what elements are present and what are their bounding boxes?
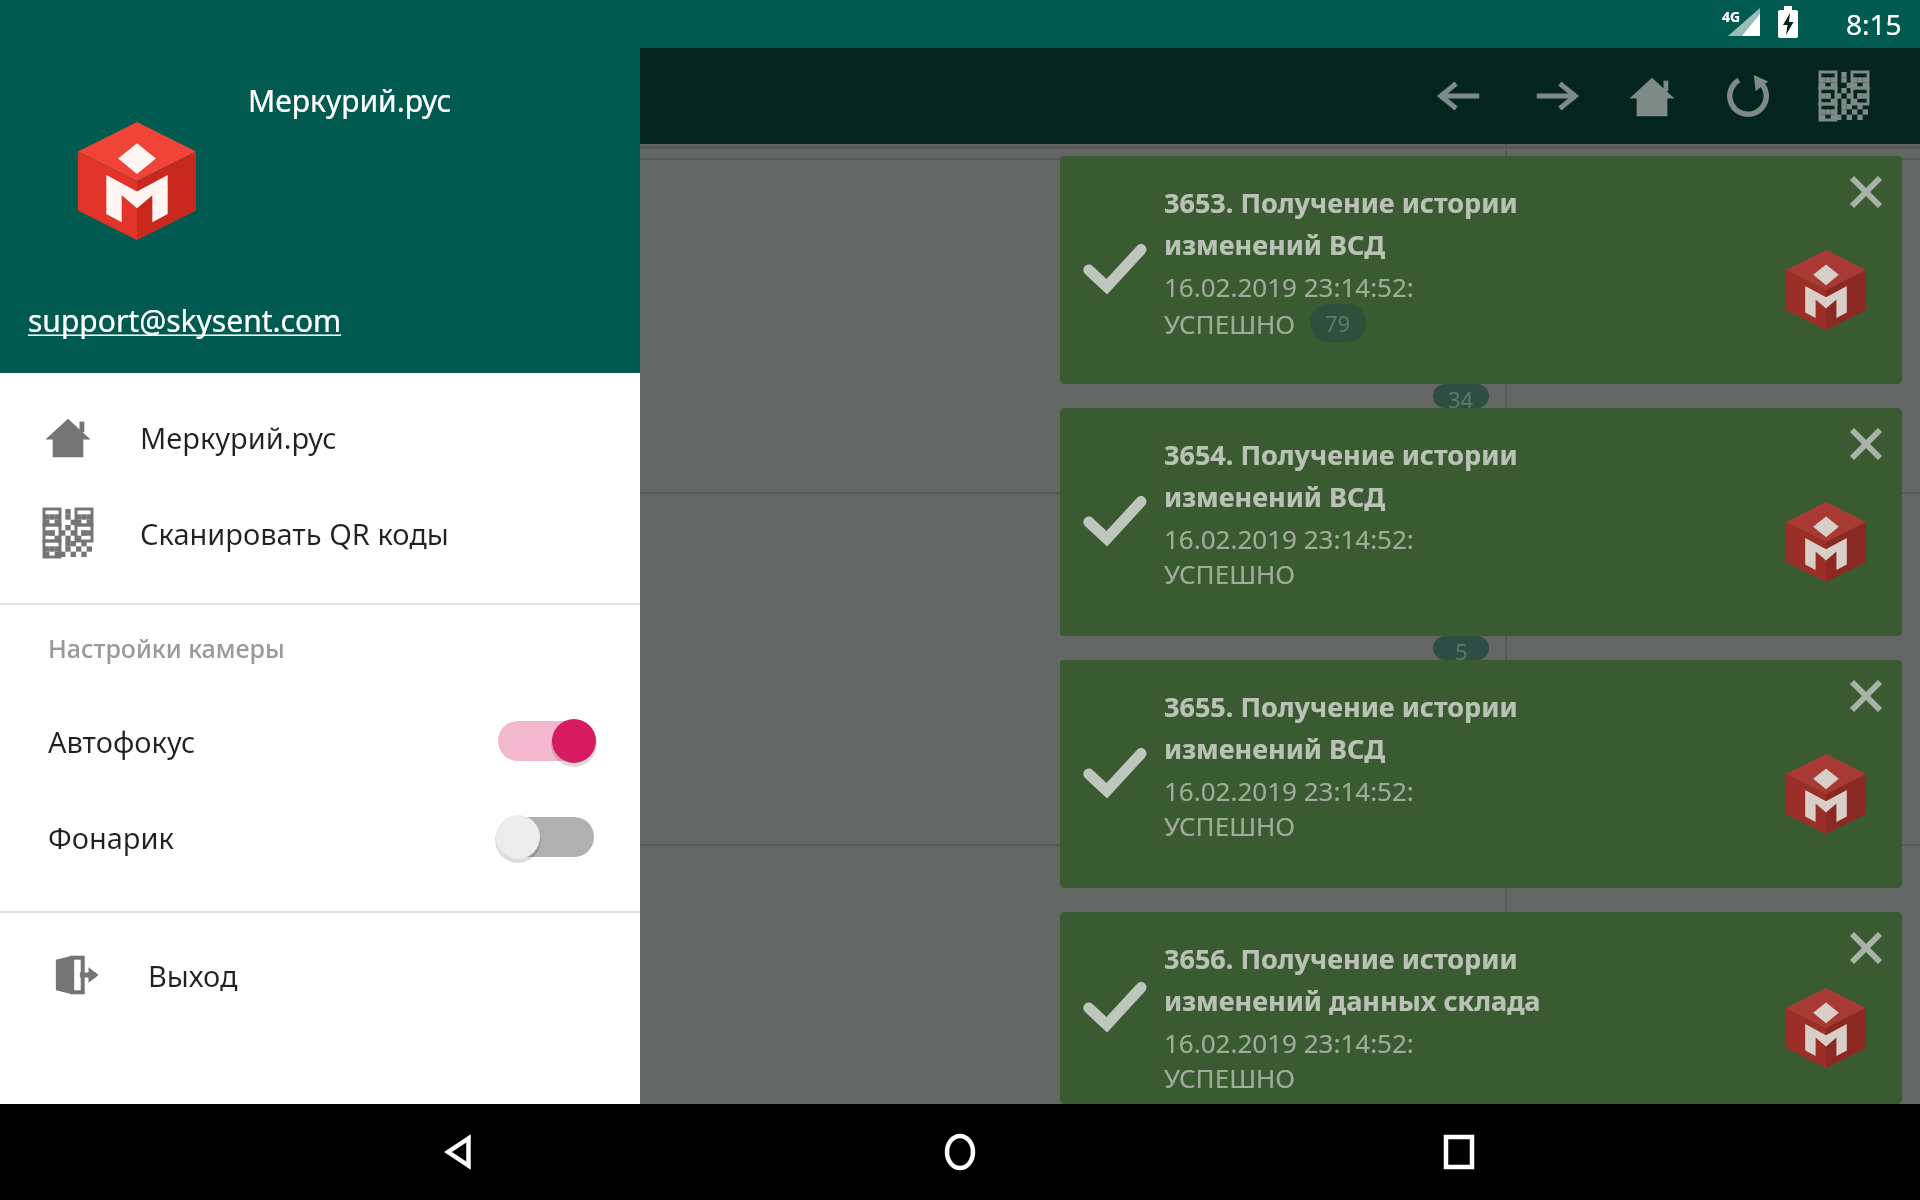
staticText: 79 <box>1325 308 1351 338</box>
button[interactable]: Меркурий.рус <box>0 389 640 485</box>
button[interactable]: Scan QR code <box>1796 48 1892 144</box>
button[interactable]: Home <box>922 1114 998 1190</box>
staticText: Настройки камеры <box>48 631 285 665</box>
staticText: 8:15 <box>1846 5 1902 43</box>
staticText: 16.02.2019 23:14:52: <box>1164 521 1414 556</box>
staticText: 3653. Получение истории изменений ВСД <box>1164 184 1518 263</box>
button[interactable]: Back <box>1412 48 1508 144</box>
button[interactable]: Recent apps <box>1421 1114 1497 1190</box>
button[interactable]: 3654. Получение истории изменений ВСД <box>1060 408 1902 636</box>
button[interactable]: 3653. Получение истории изменений ВСД <box>1060 156 1902 384</box>
button[interactable]: Выход <box>0 927 640 1023</box>
staticText: Выход <box>148 956 238 995</box>
staticText: 16.02.2019 23:14:52: <box>1164 1025 1414 1060</box>
staticText: 4G <box>1722 7 1741 26</box>
staticText: Сканировать QR коды <box>140 514 449 553</box>
button[interactable]: Close notification <box>1830 660 1902 732</box>
button[interactable]: Автофокус <box>0 693 640 789</box>
staticText: 3654. Получение истории изменений ВСД <box>1164 436 1518 515</box>
staticText: 16.02.2019 23:14:52: <box>1164 269 1414 304</box>
button[interactable]: Forward <box>1508 48 1604 144</box>
staticText: 16.02.2019 23:14:52: <box>1164 773 1414 808</box>
button[interactable]: 3655. Получение истории изменений ВСД <box>1060 660 1902 888</box>
staticText: Меркурий.рус <box>248 80 452 121</box>
staticText: 34 <box>1448 384 1474 408</box>
staticText: Фонарик <box>48 818 174 857</box>
staticText: Меркурий.рус <box>140 418 337 457</box>
button[interactable]: Reload <box>1700 48 1796 144</box>
button[interactable]: Back <box>423 1114 499 1190</box>
button[interactable]: Close notification <box>1830 912 1902 984</box>
button[interactable]: Сканировать QR коды <box>0 485 640 581</box>
staticText: УСПЕШНО <box>1164 1060 1296 1095</box>
staticText: 3655. Получение истории изменений ВСД <box>1164 688 1518 767</box>
staticText: УСПЕШНО <box>1164 556 1296 591</box>
button[interactable]: 3656. Получение истории изменений данных… <box>1060 912 1902 1104</box>
button[interactable]: support@skysent.com <box>28 300 342 341</box>
staticText: 3656. Получение истории изменений данных… <box>1164 940 1541 1019</box>
staticText: УСПЕШНО <box>1164 306 1296 341</box>
button[interactable]: Фонарик <box>0 789 640 885</box>
staticText: 5 <box>1455 636 1468 660</box>
button[interactable]: Close notification <box>1830 408 1902 480</box>
button[interactable]: Home <box>1604 48 1700 144</box>
staticText: Автофокус <box>48 722 196 761</box>
button[interactable]: Close notification <box>1830 156 1902 228</box>
staticText: УСПЕШНО <box>1164 808 1296 843</box>
